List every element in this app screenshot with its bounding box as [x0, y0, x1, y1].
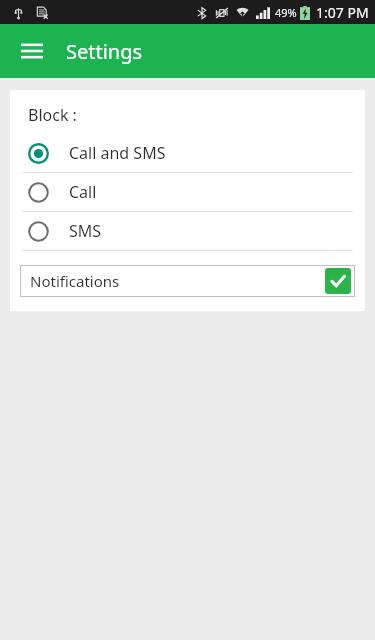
staticText: Call and SMS: [69, 142, 166, 164]
button[interactable]: Call: [10, 173, 365, 211]
staticText: SMS: [69, 220, 102, 242]
button[interactable]: SMS: [10, 212, 365, 250]
staticText: Settings: [66, 38, 143, 65]
staticText: 49%: [275, 5, 297, 20]
staticText: Notifications: [30, 271, 120, 291]
staticText: Call: [69, 181, 97, 203]
staticText: 1:07 PM: [316, 3, 369, 22]
button[interactable]: Notifications: [20, 265, 355, 297]
staticText: Block :: [28, 104, 77, 126]
other: Notifications enabled: [325, 268, 351, 294]
button[interactable]: Call and SMS: [10, 134, 365, 172]
button[interactable]: Open navigation drawer: [10, 29, 54, 73]
